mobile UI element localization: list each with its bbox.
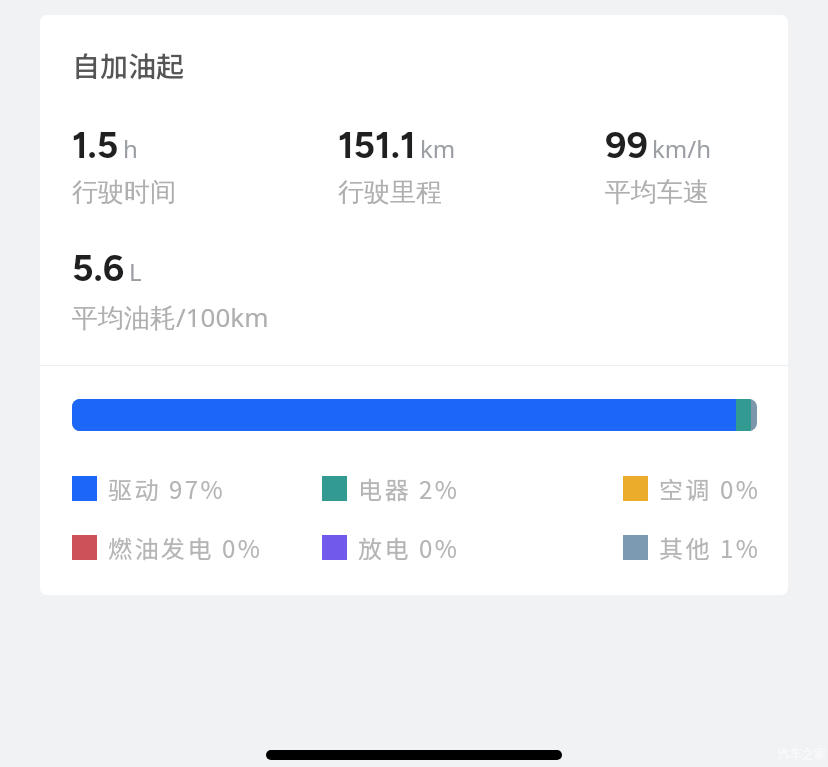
button[interactable]: 驱动 97% [72, 471, 226, 506]
button[interactable]: 1.5 [72, 123, 338, 209]
staticText: 5.6 [72, 246, 125, 290]
staticText: 151.1 [338, 123, 416, 167]
staticText: 电器 2% [358, 471, 460, 506]
staticText: 驱动 97% [108, 471, 226, 506]
button[interactable]: Energy usage breakdown [72, 399, 757, 431]
staticText: 燃油发电 0% [108, 530, 263, 565]
button[interactable]: 放电 0% [322, 530, 460, 565]
staticText: 汽车之家 [778, 746, 826, 761]
staticText: 1.5 [72, 123, 119, 167]
button[interactable]: 自加油起 [72, 45, 185, 86]
staticText: km [420, 132, 456, 165]
staticText: 行驶时间 [72, 176, 176, 209]
button[interactable]: 151.1 [338, 123, 605, 209]
staticText: 平均油耗/100km [72, 299, 269, 335]
staticText: 其他 1% [659, 530, 761, 565]
staticText: 99 [605, 123, 648, 167]
button[interactable]: 其他 1% [623, 530, 761, 565]
button[interactable]: 99 [605, 123, 712, 209]
button[interactable]: 燃油发电 0% [72, 530, 263, 565]
staticText: km/h [652, 132, 712, 165]
button[interactable]: 空调 0% [623, 471, 761, 506]
staticText: h [123, 132, 138, 165]
button[interactable]: 5.6 [72, 246, 269, 335]
staticText: 放电 0% [358, 530, 460, 565]
staticText: 平均车速 [605, 176, 709, 209]
button[interactable]: 电器 2% [322, 471, 460, 506]
staticText: 行驶里程 [338, 176, 442, 209]
staticText: 空调 0% [659, 471, 761, 506]
button[interactable]: Home indicator [266, 750, 562, 760]
staticText: L [129, 255, 142, 288]
